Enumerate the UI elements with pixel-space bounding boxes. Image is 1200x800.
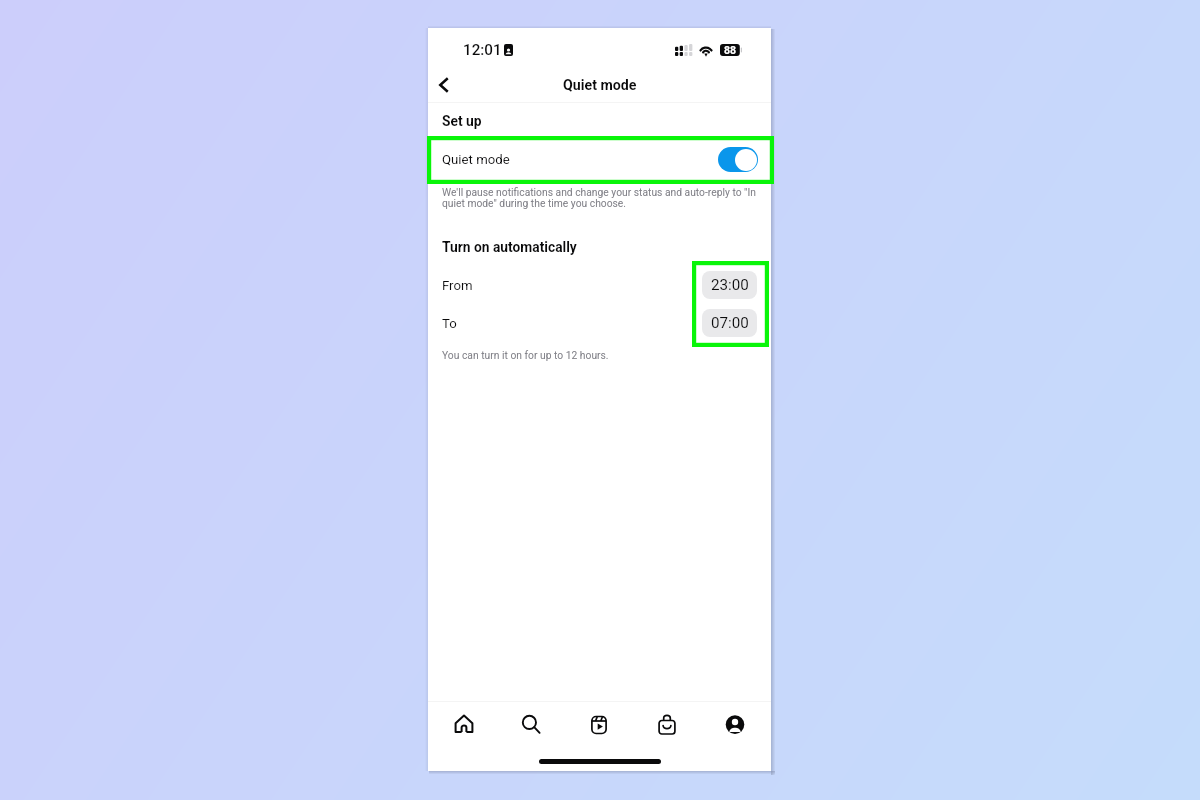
- button[interactable]: Back: [428, 70, 459, 100]
- button[interactable]: Shop: [633, 704, 701, 744]
- button[interactable]: Reels: [565, 704, 633, 744]
- button[interactable]: From: [428, 266, 771, 304]
- staticText: From: [442, 278, 473, 293]
- staticText: 07:00: [711, 314, 749, 332]
- staticText: Set up: [442, 113, 482, 129]
- button[interactable]: Quiet mode toggle, on: [718, 147, 758, 172]
- button[interactable]: Profile: [701, 704, 769, 744]
- staticText: Turn on automatically: [442, 239, 577, 255]
- button[interactable]: Search: [497, 704, 565, 744]
- staticText: You can turn it on for up to 12 hours.: [442, 349, 609, 361]
- staticText: 23:00: [711, 276, 749, 294]
- button[interactable]: To: [428, 304, 771, 342]
- staticText: We'll pause notifications and change you…: [442, 186, 760, 210]
- button[interactable]: Home: [430, 704, 497, 744]
- button[interactable]: Quiet mode: [428, 137, 771, 181]
- staticText: To: [442, 316, 457, 331]
- staticText: Quiet mode: [442, 152, 510, 167]
- staticText: 88: [724, 44, 737, 56]
- staticText: Quiet mode: [563, 77, 637, 94]
- button[interactable]: 23:00: [702, 271, 757, 299]
- staticText: 12:01: [463, 41, 502, 59]
- button[interactable]: 07:00: [702, 309, 757, 337]
